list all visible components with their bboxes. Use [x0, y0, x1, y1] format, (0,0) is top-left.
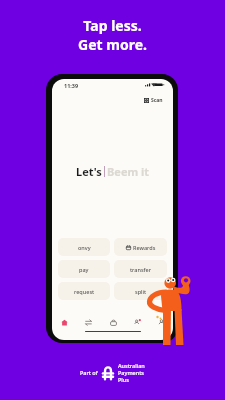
staticText: Beem it [107, 164, 150, 179]
staticText: onvy [78, 244, 91, 251]
button[interactable]: Profile [156, 317, 166, 327]
staticText: request [74, 288, 95, 295]
staticText: Part of [80, 369, 98, 376]
staticText: Tap less. [83, 16, 142, 35]
staticText: transfer [130, 266, 152, 273]
button[interactable]: Home [59, 317, 69, 327]
staticText: Let's [76, 164, 102, 179]
button[interactable]: pay [58, 260, 110, 278]
button[interactable]: Contacts [132, 317, 142, 327]
staticText: split [135, 288, 147, 295]
button[interactable]: Activity [83, 317, 93, 327]
staticText: Plus [118, 376, 129, 383]
staticText: Australian [118, 362, 145, 369]
button[interactable]: onvy [58, 238, 110, 256]
button[interactable]: Scan [142, 96, 165, 105]
button[interactable]: Wallet [108, 317, 118, 327]
button[interactable]: request [58, 282, 110, 300]
staticText: Payments [118, 369, 144, 376]
staticText: Get more. [78, 35, 147, 54]
staticText: pay [79, 266, 89, 273]
button[interactable]: split [114, 282, 167, 300]
staticText: Scan [151, 97, 163, 104]
staticText: 11:39 [64, 82, 79, 89]
staticText: Rewards [133, 244, 156, 251]
button[interactable]: Rewards [114, 238, 167, 256]
button[interactable]: transfer [114, 260, 167, 278]
